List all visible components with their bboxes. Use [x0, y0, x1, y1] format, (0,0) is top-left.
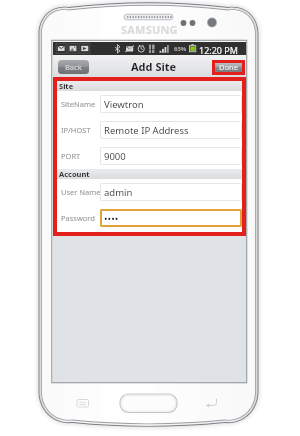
staticText: admin [104, 186, 133, 199]
staticText: Account [59, 169, 90, 179]
staticText: 65% [174, 45, 187, 53]
button[interactable]: SiteName [57, 91, 242, 117]
button[interactable]: Password [57, 205, 242, 231]
staticText: User Name [61, 187, 100, 197]
staticText: Add Site [131, 59, 177, 74]
staticText: IP/HOST [61, 125, 91, 135]
button[interactable]: PORT [57, 143, 242, 169]
staticText: SAMSUNG [121, 22, 178, 36]
staticText: Site [59, 81, 74, 91]
staticText: •••• [104, 212, 119, 225]
button[interactable]: User Name [57, 179, 242, 205]
staticText: SiteName [61, 99, 96, 109]
staticText: Back [65, 62, 82, 72]
button[interactable]: Back [58, 60, 89, 74]
staticText: Done [219, 62, 238, 72]
staticText: Remote IP Address [104, 124, 189, 137]
staticText: Password [61, 213, 95, 223]
staticText: Viewtron [104, 98, 144, 111]
staticText: 12:20 PM [199, 44, 238, 56]
button[interactable]: IP/HOST [57, 117, 242, 143]
staticText: 9000 [104, 150, 126, 163]
button[interactable]: Done [212, 60, 245, 75]
staticText: PORT [61, 151, 81, 161]
